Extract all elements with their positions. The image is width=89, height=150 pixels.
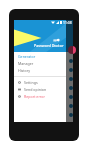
staticText: Password Doctor (34, 43, 64, 48)
staticText: Manager (18, 61, 34, 66)
staticText: 11:08 (63, 20, 72, 25)
button[interactable]: Add password (68, 46, 76, 54)
button[interactable]: Generator (14, 53, 66, 60)
staticText: Send opinion (24, 87, 47, 92)
button[interactable] (14, 74, 73, 83)
button[interactable] (14, 65, 73, 74)
button[interactable] (14, 83, 73, 92)
button[interactable] (14, 101, 73, 110)
staticText: History (18, 68, 31, 73)
button[interactable] (14, 92, 73, 101)
button[interactable] (14, 56, 73, 65)
staticText: Generator (18, 54, 36, 59)
button[interactable]: Manager (14, 60, 66, 67)
button[interactable] (14, 110, 73, 119)
staticText: Settings (24, 80, 38, 85)
button[interactable]: History (14, 67, 66, 74)
staticText: Report error (24, 94, 45, 99)
button[interactable]: Report error (14, 93, 66, 100)
button[interactable]: Settings (14, 79, 66, 86)
button[interactable]: Send opinion (14, 86, 66, 93)
